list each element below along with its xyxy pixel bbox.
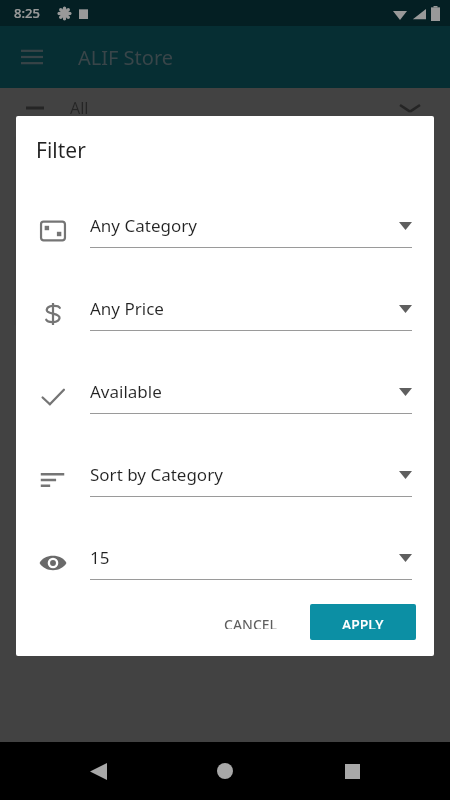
staticText: 15	[90, 546, 110, 569]
button[interactable]: Any Price	[16, 272, 434, 355]
button[interactable]: Open navigation menu	[10, 35, 54, 79]
button[interactable]: 15	[16, 521, 434, 604]
staticText: FREE	[118, 379, 149, 397]
button[interactable]: Sort by Category	[16, 438, 434, 521]
staticText: Any Price	[90, 297, 164, 320]
button[interactable]: USED	[62, 400, 436, 422]
button[interactable]: Any Category	[16, 189, 434, 272]
staticText: FREE	[130, 403, 161, 421]
button[interactable]: Available	[16, 355, 434, 438]
button[interactable]: APPLY	[310, 604, 416, 640]
staticText: Sort by Category	[90, 463, 223, 486]
staticText: USED	[82, 403, 116, 421]
staticText: APPLY	[342, 615, 384, 629]
staticText: USED	[34, 307, 68, 325]
button[interactable]: Recent apps	[332, 751, 372, 791]
staticText: 8:25	[14, 4, 40, 22]
button[interactable]: CANCEL	[206, 604, 296, 640]
staticText: Filter	[36, 136, 86, 165]
button[interactable]: Back	[78, 751, 118, 791]
button[interactable]: Home	[205, 751, 245, 791]
staticText: FREE	[82, 307, 113, 325]
button[interactable]: USED	[26, 328, 400, 350]
button[interactable]: USED	[14, 136, 388, 326]
button[interactable]: All	[12, 88, 438, 128]
staticText: Any Category	[90, 214, 197, 237]
staticText: CANCEL	[224, 615, 278, 629]
button[interactable]: USED	[50, 376, 424, 398]
staticText: ALIF Store	[78, 44, 174, 71]
staticText: Available	[90, 380, 162, 403]
staticText: USED	[70, 379, 104, 397]
staticText: All	[70, 97, 89, 119]
